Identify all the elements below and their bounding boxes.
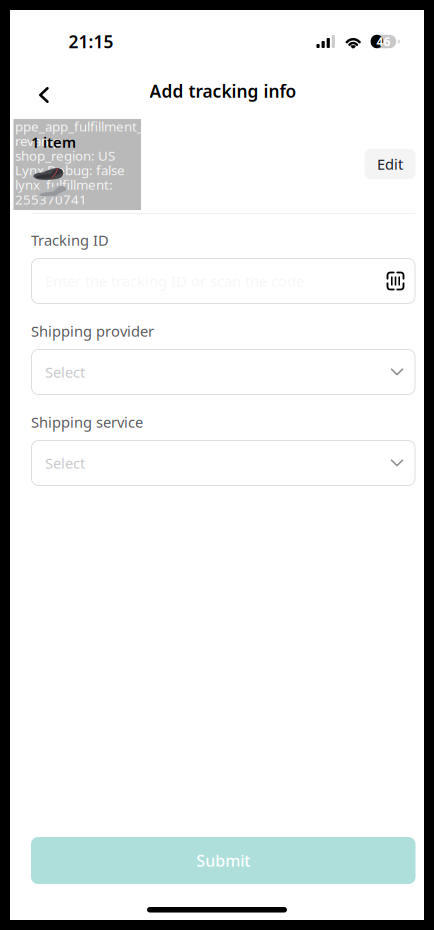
staticText: 255370741 <box>15 190 87 208</box>
button[interactable]: Select <box>31 440 415 486</box>
staticText: Lynx Debug: false <box>15 161 125 179</box>
button[interactable]: Select <box>31 349 415 395</box>
button[interactable]: Submit <box>31 837 415 884</box>
staticText: 21:15 <box>68 30 113 53</box>
staticText: ppe_app_fulfillment_ <box>15 117 143 135</box>
staticText: Tracking ID <box>31 230 109 250</box>
button[interactable]: Edit <box>364 149 415 179</box>
staticText: shop_region: US <box>15 147 115 164</box>
staticText: Edit <box>377 154 403 174</box>
staticText: revamp <box>15 132 61 150</box>
staticText: 46 <box>376 33 390 49</box>
button[interactable]: Back <box>22 73 66 117</box>
staticText: Select <box>45 362 85 382</box>
staticText: Shipping service <box>31 412 143 432</box>
staticText: 1 item <box>31 132 76 152</box>
staticText: Select <box>45 453 85 473</box>
staticText: Shipping provider <box>31 321 154 341</box>
staticText: lynx_fulfillment: <box>15 176 113 193</box>
staticText: Submit <box>196 850 250 871</box>
staticText: Add tracking info <box>149 79 296 102</box>
